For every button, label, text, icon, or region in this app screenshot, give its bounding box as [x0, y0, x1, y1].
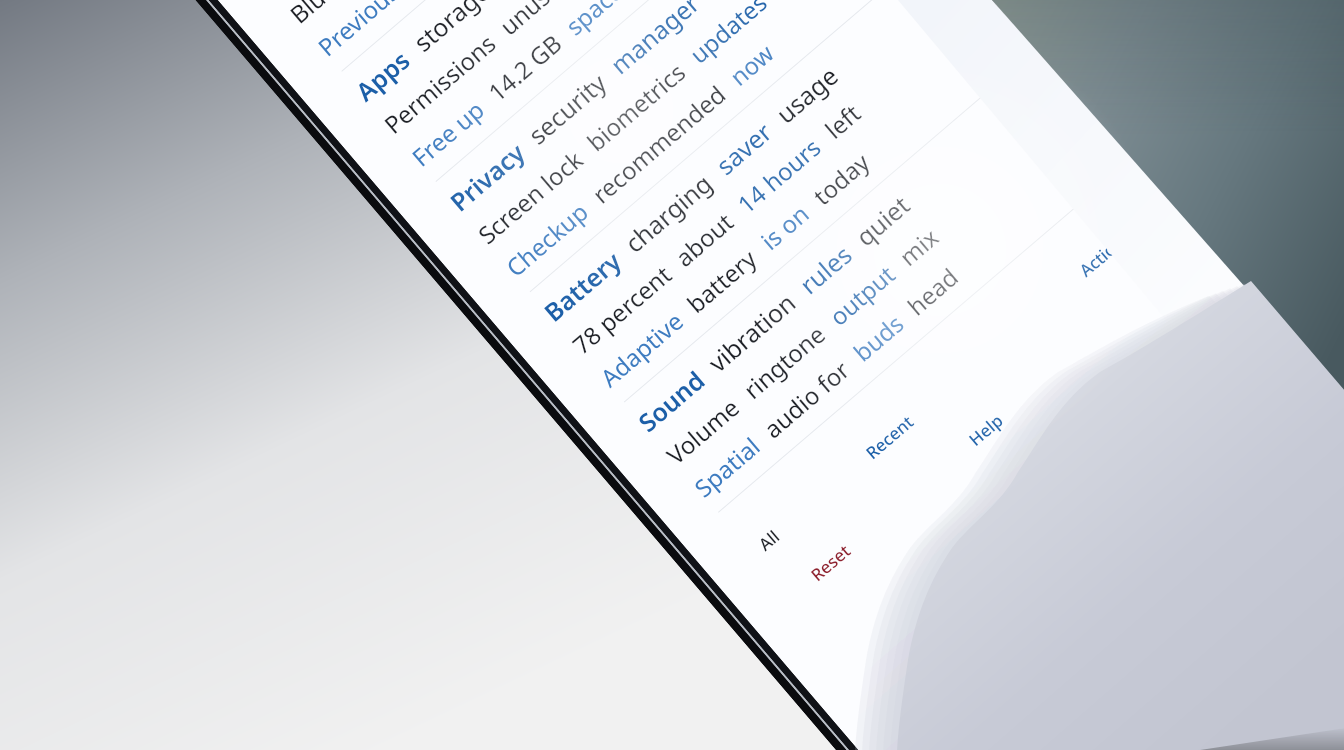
- staticText: updates: [682, 0, 774, 70]
- button[interactable]: Battery: [494, 0, 1023, 434]
- staticText: rules: [792, 237, 859, 301]
- staticText: biometrics: [580, 55, 692, 158]
- staticText: saver: [708, 114, 779, 182]
- button[interactable]: Help: [957, 402, 1015, 458]
- staticText: left: [818, 96, 867, 145]
- staticText: Bluetooth: [283, 0, 389, 30]
- button[interactable]: Privacy: [400, 0, 929, 323]
- staticText: Reset: [806, 539, 856, 586]
- staticText: usage: [768, 58, 845, 130]
- staticText: Permissions: [377, 27, 502, 141]
- staticText: is on: [753, 197, 816, 257]
- staticText: quiet: [848, 187, 917, 253]
- button[interactable]: Apps: [305, 0, 834, 213]
- button[interactable]: Reset: [799, 532, 863, 593]
- staticText: 78 percent: [565, 258, 678, 361]
- staticText: keys: [696, 0, 757, 2]
- staticText: Recent: [861, 410, 918, 464]
- staticText: vibration: [701, 285, 803, 379]
- staticText: Previously: [310, 0, 419, 63]
- staticText: Sound: [631, 363, 711, 439]
- button[interactable]: All: [746, 518, 791, 563]
- staticText: space: [558, 0, 629, 42]
- staticText: Help: [964, 409, 1008, 451]
- staticText: Privacy: [442, 135, 531, 218]
- staticText: security: [521, 65, 613, 151]
- staticText: 14.2 GB: [481, 27, 568, 108]
- staticText: Spatial: [687, 430, 766, 504]
- staticText: Free up: [405, 93, 491, 173]
- button[interactable]: Recent: [854, 403, 925, 471]
- staticText: Volume: [659, 390, 746, 471]
- staticText: unused: [492, 0, 578, 42]
- staticText: ringtone: [736, 317, 832, 406]
- staticText: audio for: [756, 353, 856, 445]
- staticText: Checkup: [499, 195, 595, 284]
- staticText: All: [753, 524, 784, 556]
- staticText: 14 hours: [730, 130, 828, 220]
- staticText: about: [668, 205, 740, 273]
- staticText: Battery: [536, 243, 628, 328]
- staticText: head: [900, 260, 965, 322]
- button[interactable]: Actions: [1067, 218, 1142, 288]
- staticText: storage: [406, 0, 496, 59]
- staticText: manager: [603, 0, 706, 81]
- staticText: battery: [680, 241, 763, 320]
- staticText: Actions: [1074, 225, 1135, 282]
- staticText: Apps: [348, 42, 417, 108]
- staticText: output: [822, 257, 902, 332]
- button[interactable]: Sound: [588, 62, 1117, 544]
- staticText: charging: [617, 166, 719, 260]
- staticText: now: [722, 36, 780, 93]
- staticText: Adaptive: [593, 304, 690, 394]
- staticText: mix: [892, 220, 945, 273]
- staticText: recommended: [585, 77, 732, 210]
- staticText: today: [806, 145, 876, 212]
- button[interactable]: Devices: [211, 0, 740, 103]
- staticText: Screen lock: [471, 143, 590, 251]
- staticText: buds: [846, 307, 910, 368]
